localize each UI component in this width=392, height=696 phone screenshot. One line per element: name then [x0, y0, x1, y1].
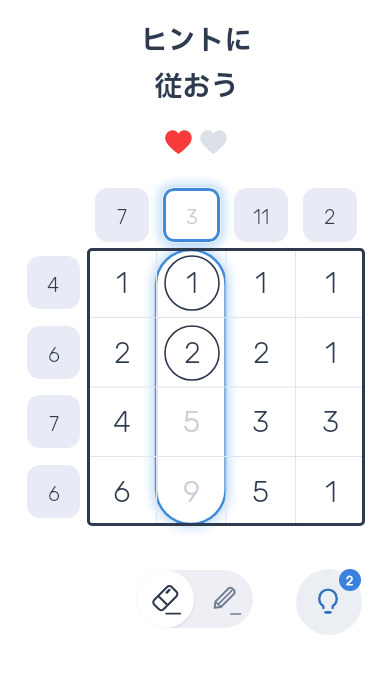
staticText: 1: [186, 265, 198, 301]
staticText: 5: [183, 404, 201, 440]
button[interactable]: 4: [27, 256, 80, 309]
button[interactable]: Eraser: [136, 570, 194, 628]
staticText: 従おう: [154, 66, 239, 108]
button[interactable]: 6: [27, 326, 80, 379]
staticText: 1: [325, 335, 337, 371]
staticText: 6: [48, 482, 60, 506]
other: 2 hints remaining: [339, 569, 361, 591]
button[interactable]: 6: [87, 457, 157, 527]
staticText: 5: [252, 474, 270, 510]
button[interactable]: 3: [163, 188, 220, 242]
button[interactable]: 2: [226, 318, 296, 388]
button[interactable]: 2: [303, 188, 357, 242]
staticText: 4: [113, 404, 131, 440]
staticText: 1: [255, 265, 267, 301]
button[interactable]: 1: [296, 318, 366, 388]
button[interactable]: 7: [27, 395, 80, 448]
staticText: 2: [346, 573, 354, 588]
staticText: 11: [253, 205, 270, 229]
button[interactable]: 3: [226, 387, 296, 457]
staticText: 1: [116, 265, 128, 301]
staticText: 2: [324, 205, 336, 229]
button[interactable]: 2: [157, 318, 227, 388]
button[interactable]: 3: [296, 387, 366, 457]
staticText: 9: [183, 474, 201, 510]
staticText: 3: [252, 404, 270, 440]
staticText: 2: [184, 335, 201, 371]
button[interactable]: 5: [226, 457, 296, 527]
button[interactable]: 5: [157, 387, 227, 457]
staticText: 4: [47, 273, 60, 297]
staticText: 2: [114, 335, 131, 371]
button[interactable]: 6: [27, 465, 80, 518]
button[interactable]: Hint: [296, 569, 362, 635]
button[interactable]: 2: [87, 318, 157, 388]
button[interactable]: 1: [157, 248, 227, 318]
button[interactable]: 7: [95, 188, 149, 242]
staticText: 6: [113, 474, 131, 510]
staticText: 3: [186, 205, 198, 229]
button[interactable]: 1: [296, 248, 366, 318]
button[interactable]: 1: [87, 248, 157, 318]
button[interactable]: 1: [296, 457, 366, 527]
staticText: 6: [48, 343, 60, 367]
staticText: 7: [49, 412, 59, 436]
staticText: 1: [325, 474, 337, 510]
button[interactable]: 11: [234, 188, 288, 242]
staticText: ヒントに: [140, 20, 252, 62]
staticText: 7: [117, 205, 127, 229]
staticText: 1: [325, 265, 337, 301]
staticText: 3: [322, 404, 340, 440]
button[interactable]: 9: [157, 457, 227, 527]
button[interactable]: 1: [226, 248, 296, 318]
button[interactable]: 4: [87, 387, 157, 457]
button[interactable]: Pencil: [195, 570, 253, 628]
staticText: 2: [253, 335, 270, 371]
